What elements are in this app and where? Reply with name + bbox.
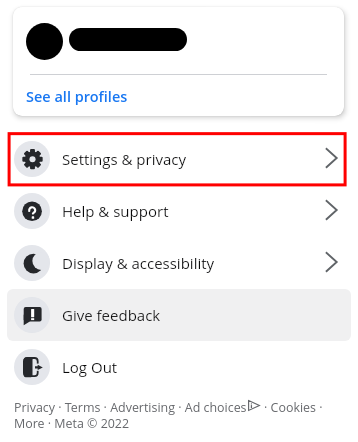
staticText: Log Out bbox=[62, 357, 118, 377]
button[interactable]: Log Out bbox=[7, 341, 351, 393]
staticText: Privacy · Terms · Advertising · Ad choic… bbox=[14, 399, 247, 416]
button[interactable]: Display & accessibility bbox=[7, 237, 351, 289]
button[interactable]: Settings & privacy bbox=[7, 133, 351, 185]
staticText: Display & accessibility bbox=[62, 253, 215, 273]
staticText: · Cookies · bbox=[264, 399, 323, 416]
button[interactable]: Give feedback bbox=[7, 289, 351, 341]
staticText: Settings & privacy bbox=[62, 149, 187, 169]
button[interactable]: · Cookies · bbox=[264, 399, 323, 416]
button[interactable]: Privacy · Terms · Advertising · Ad choic… bbox=[14, 399, 247, 416]
staticText: Give feedback bbox=[62, 305, 161, 325]
staticText: More · Meta © 2022 bbox=[14, 415, 130, 432]
button[interactable]: See all profiles bbox=[13, 77, 344, 116]
button[interactable]: Help & support bbox=[7, 185, 351, 237]
button[interactable]: More · Meta © 2022 bbox=[14, 415, 130, 432]
other: Ad choices bbox=[248, 400, 261, 411]
button[interactable]: Current profile bbox=[13, 7, 344, 73]
staticText: See all profiles bbox=[26, 87, 128, 107]
staticText: Help & support bbox=[62, 201, 169, 221]
